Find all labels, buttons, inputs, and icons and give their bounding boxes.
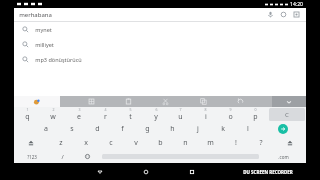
staticText: 8	[204, 107, 207, 112]
staticText: s	[70, 124, 74, 134]
staticText: /	[61, 153, 64, 161]
staticText: 2	[52, 107, 55, 112]
staticText: l	[247, 124, 249, 134]
staticText: 3	[78, 107, 81, 112]
button[interactable]: x	[73, 136, 98, 150]
button[interactable]: g	[135, 122, 160, 136]
button[interactable]: /	[50, 150, 75, 163]
staticText: v	[134, 138, 138, 148]
staticText: w	[50, 112, 56, 122]
button[interactable]: Collapse toolbar	[272, 96, 306, 107]
button[interactable]: Back	[77, 163, 123, 180]
button[interactable]: v	[123, 136, 148, 150]
staticText: mp3 dönüştürücü	[35, 56, 82, 63]
staticText: p	[253, 112, 258, 122]
button[interactable]: z	[48, 136, 73, 150]
button[interactable]: Keyboard layout	[86, 96, 97, 107]
button[interactable]: merhabana	[14, 8, 306, 21]
button[interactable]: c	[98, 136, 123, 150]
button[interactable]: 2	[40, 107, 66, 122]
staticText: 0	[254, 107, 257, 112]
button[interactable]: h	[160, 122, 185, 136]
staticText: 9	[229, 107, 232, 112]
button[interactable]: Backspace	[269, 108, 305, 121]
staticText: a	[44, 124, 48, 134]
staticText: r	[104, 112, 107, 122]
staticText: 14:20	[290, 1, 303, 8]
button[interactable]: Shift	[273, 136, 306, 150]
staticText: k	[221, 124, 225, 134]
button[interactable]: Search settings	[279, 10, 288, 19]
button[interactable]: Emoji	[75, 150, 100, 163]
button[interactable]: ?123	[14, 150, 50, 163]
staticText: DU SCREEN RECORDER	[243, 169, 293, 175]
staticText: g	[145, 124, 150, 134]
button[interactable]: 8	[193, 107, 218, 122]
button[interactable]: 5	[118, 107, 143, 122]
button[interactable]: 7	[168, 107, 193, 122]
button[interactable]: d	[85, 122, 110, 136]
staticText: b	[158, 138, 163, 148]
button[interactable]: m	[198, 136, 223, 150]
staticText: mynet	[35, 26, 52, 33]
button[interactable]: Clipboard	[123, 96, 134, 107]
staticText: z	[59, 138, 63, 148]
staticText: q	[25, 112, 30, 122]
button[interactable]: ?	[248, 136, 273, 150]
button[interactable]: n	[173, 136, 198, 150]
staticText: x	[84, 138, 88, 148]
button[interactable]: 4	[92, 107, 118, 122]
staticText: i	[205, 112, 207, 122]
button[interactable]: milliyet	[14, 37, 306, 52]
button[interactable]: Google Lens	[292, 10, 301, 19]
button[interactable]: Shift	[14, 136, 48, 150]
button[interactable]: s	[59, 122, 85, 136]
button[interactable]: Copy	[198, 96, 209, 107]
staticText: n	[183, 138, 188, 148]
staticText: f	[121, 124, 124, 134]
staticText: d	[95, 124, 100, 134]
staticText: 6	[155, 107, 158, 112]
staticText: !	[235, 138, 237, 148]
staticText: t	[129, 112, 132, 122]
staticText: merhabana	[19, 11, 52, 19]
staticText: m	[207, 138, 214, 148]
button[interactable]: 9	[218, 107, 243, 122]
staticText: .com	[278, 154, 289, 160]
button[interactable]: 0	[243, 107, 268, 122]
button[interactable]: 6	[143, 107, 168, 122]
staticText: u	[178, 112, 183, 122]
staticText: c	[109, 138, 113, 148]
button[interactable]: Undo	[235, 96, 246, 107]
button[interactable]: k	[210, 122, 235, 136]
button[interactable]: j	[185, 122, 210, 136]
staticText: ?	[259, 138, 263, 148]
staticText: C	[285, 111, 289, 119]
button[interactable]: Search	[278, 124, 288, 134]
staticText: 7	[179, 107, 182, 112]
button[interactable]: b	[148, 136, 173, 150]
button[interactable]: Home	[123, 163, 169, 180]
staticText: milliyet	[35, 41, 54, 48]
button[interactable]: f	[110, 122, 135, 136]
button[interactable]: mynet	[14, 22, 306, 37]
staticText: y	[154, 112, 158, 122]
staticText: 1	[26, 107, 29, 112]
button[interactable]: 1	[14, 107, 40, 122]
staticText: 4	[104, 107, 107, 112]
staticText: j	[197, 124, 199, 134]
button[interactable]: l	[235, 122, 260, 136]
button[interactable]: mp3 dönüştürücü	[14, 52, 306, 67]
staticText: e	[77, 112, 81, 122]
staticText: h	[170, 124, 175, 134]
staticText: o	[228, 112, 233, 122]
button[interactable]: a	[33, 122, 59, 136]
button[interactable]: Recents	[169, 163, 215, 180]
staticText: ?123	[27, 154, 37, 160]
button[interactable]: 3	[66, 107, 92, 122]
button[interactable]: !	[223, 136, 248, 150]
button[interactable]: Cut	[160, 96, 171, 107]
button[interactable]: Voice search	[266, 10, 275, 19]
button[interactable]: .com	[261, 150, 306, 163]
